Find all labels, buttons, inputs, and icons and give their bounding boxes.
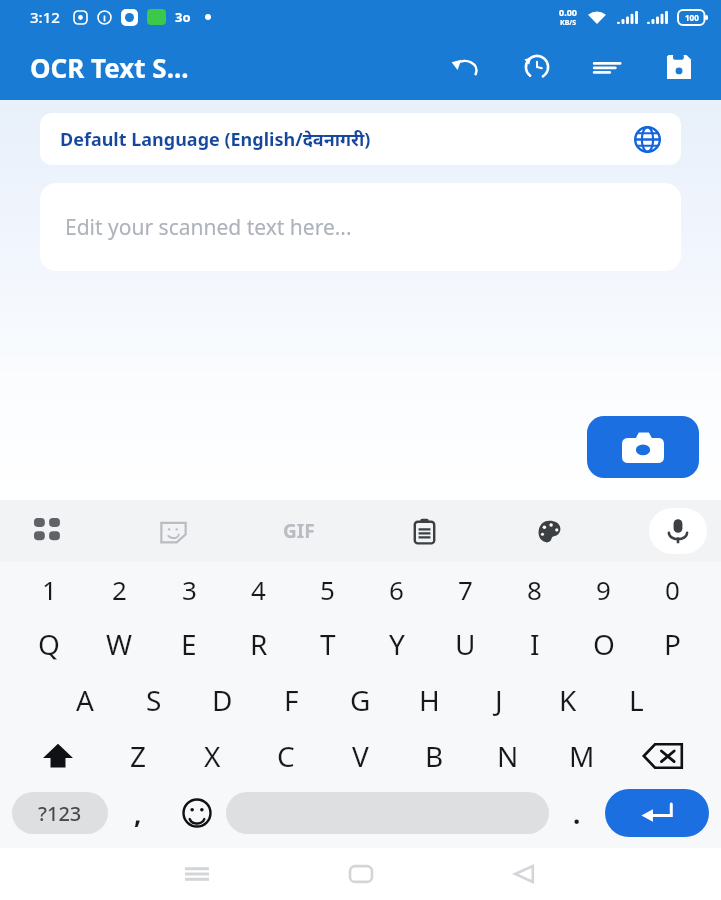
- staticText: Default Language (English/देवनागरी): [60, 127, 371, 152]
- staticText: D: [212, 681, 233, 719]
- button[interactable]: V: [323, 728, 397, 784]
- button[interactable]: 8: [500, 562, 569, 616]
- staticText: R: [250, 625, 268, 663]
- button[interactable]: Enter: [605, 789, 709, 837]
- button[interactable]: W: [84, 616, 154, 672]
- staticText: 3:12: [30, 7, 60, 27]
- button[interactable]: Choose language: [631, 123, 663, 155]
- button[interactable]: History: [515, 45, 559, 89]
- button[interactable]: 2: [84, 562, 154, 616]
- button[interactable]: N: [471, 728, 545, 784]
- button[interactable]: Back: [498, 848, 550, 900]
- staticText: O: [593, 625, 615, 663]
- staticText: Y: [389, 625, 405, 663]
- button[interactable]: GIF: [274, 506, 324, 556]
- staticText: A: [76, 681, 94, 719]
- staticText: .: [573, 796, 581, 831]
- staticText: F: [284, 681, 299, 719]
- button[interactable]: 7: [431, 562, 500, 616]
- button[interactable]: .: [549, 784, 605, 842]
- button[interactable]: C: [249, 728, 323, 784]
- button[interactable]: Undo: [444, 45, 488, 89]
- button[interactable]: Home: [335, 848, 387, 900]
- button[interactable]: M: [545, 728, 619, 784]
- button[interactable]: Shift: [14, 728, 101, 784]
- button[interactable]: Scan with camera: [587, 416, 699, 478]
- button[interactable]: 6: [362, 562, 431, 616]
- button[interactable]: E: [154, 616, 224, 672]
- button[interactable]: Apps: [22, 506, 72, 556]
- staticText: W: [106, 625, 133, 663]
- button[interactable]: R: [224, 616, 293, 672]
- button[interactable]: H: [395, 672, 464, 728]
- button[interactable]: Backspace: [619, 728, 707, 784]
- button[interactable]: Save: [657, 45, 701, 89]
- button[interactable]: Edit your scanned text here...: [40, 183, 681, 271]
- staticText: T: [320, 625, 336, 663]
- button[interactable]: G: [326, 672, 395, 728]
- staticText: M: [569, 737, 595, 775]
- button[interactable]: Emoji: [168, 784, 226, 842]
- staticText: L: [629, 681, 644, 719]
- staticText: 1: [42, 572, 57, 607]
- button[interactable]: D: [188, 672, 257, 728]
- button[interactable]: Stickers: [148, 506, 198, 556]
- button[interactable]: O: [569, 616, 638, 672]
- button[interactable]: Z: [101, 728, 175, 784]
- button[interactable]: I: [500, 616, 569, 672]
- button[interactable]: S: [119, 672, 188, 728]
- button[interactable]: 9: [569, 562, 638, 616]
- button[interactable]: P: [638, 616, 707, 672]
- button[interactable]: Y: [362, 616, 431, 672]
- staticText: J: [495, 681, 503, 719]
- button[interactable]: Space: [226, 792, 549, 834]
- button[interactable]: X: [175, 728, 249, 784]
- button[interactable]: ?123: [12, 792, 108, 834]
- button[interactable]: 5: [293, 562, 362, 616]
- button[interactable]: Format: [586, 45, 630, 89]
- button[interactable]: Voice input: [649, 508, 707, 554]
- staticText: P: [664, 625, 681, 663]
- staticText: S: [146, 681, 162, 719]
- staticText: 2: [112, 572, 127, 607]
- button[interactable]: L: [602, 672, 671, 728]
- button[interactable]: A: [50, 672, 119, 728]
- staticText: 7: [458, 572, 473, 607]
- staticText: 5: [320, 572, 335, 607]
- button[interactable]: ,: [108, 784, 168, 842]
- staticText: Q: [38, 625, 60, 663]
- staticText: 6: [389, 572, 404, 607]
- button[interactable]: Default Language (English/देवनागरी): [40, 113, 681, 165]
- staticText: ?123: [38, 800, 82, 827]
- button[interactable]: 3: [154, 562, 224, 616]
- staticText: N: [497, 737, 519, 775]
- staticText: K: [559, 681, 577, 719]
- button[interactable]: U: [431, 616, 500, 672]
- button[interactable]: Q: [14, 616, 84, 672]
- button[interactable]: Theme: [524, 506, 574, 556]
- staticText: H: [419, 681, 440, 719]
- staticText: 100: [685, 12, 699, 23]
- staticText: B: [425, 737, 444, 775]
- button[interactable]: 1: [14, 562, 84, 616]
- staticText: 4: [251, 572, 266, 607]
- staticText: 3: [182, 572, 197, 607]
- button[interactable]: F: [257, 672, 326, 728]
- staticText: V: [352, 737, 369, 775]
- staticText: ,: [134, 796, 142, 831]
- button[interactable]: 4: [224, 562, 293, 616]
- button[interactable]: Clipboard: [399, 506, 449, 556]
- staticText: 3o: [175, 8, 191, 26]
- button[interactable]: B: [397, 728, 471, 784]
- staticText: G: [350, 681, 371, 719]
- staticText: E: [181, 625, 197, 663]
- staticText: Z: [130, 737, 147, 775]
- button[interactable]: T: [293, 616, 362, 672]
- staticText: GIF: [283, 518, 315, 544]
- staticText: 9: [596, 572, 611, 607]
- button[interactable]: K: [533, 672, 602, 728]
- button[interactable]: 0: [638, 562, 707, 616]
- button[interactable]: Recent apps: [171, 848, 223, 900]
- button[interactable]: J: [464, 672, 533, 728]
- staticText: OCR Text S...: [30, 50, 189, 85]
